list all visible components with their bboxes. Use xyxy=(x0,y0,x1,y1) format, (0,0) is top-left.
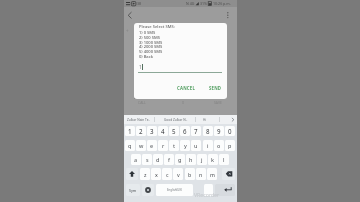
button[interactable]: a xyxy=(131,154,141,165)
button[interactable]: Hi xyxy=(195,115,215,124)
staticText: Hi xyxy=(203,118,207,122)
staticText: + xyxy=(126,28,129,34)
button[interactable] xyxy=(204,184,213,196)
button[interactable]: 7 xyxy=(191,126,201,136)
staticText: SEND xyxy=(209,85,222,91)
button[interactable]: n xyxy=(196,168,206,180)
staticText: 31% xyxy=(200,1,208,6)
button[interactable]: s xyxy=(142,154,152,165)
button[interactable] xyxy=(215,184,235,196)
staticText: 5) 4000 SMS xyxy=(139,49,163,55)
staticText: 1) 0 SMS xyxy=(139,30,156,36)
staticText: f xyxy=(168,156,170,163)
button[interactable]: d xyxy=(153,154,163,165)
button[interactable]: SEND xyxy=(205,82,226,94)
staticText: 6 xyxy=(183,127,187,135)
staticText: 10:26 p.m. xyxy=(213,1,231,6)
staticText: r xyxy=(162,142,165,149)
button[interactable]: q xyxy=(125,140,135,151)
staticText: n xyxy=(199,171,203,178)
staticText: o xyxy=(217,142,221,149)
staticText: X xyxy=(182,100,184,105)
staticText: d xyxy=(156,156,160,163)
button[interactable]: p xyxy=(225,140,235,151)
button[interactable]: m xyxy=(207,168,217,180)
button[interactable]: w xyxy=(136,140,146,151)
staticText: j xyxy=(201,156,203,163)
button[interactable]: 4 xyxy=(158,126,168,136)
staticText: c xyxy=(166,171,169,178)
button[interactable]: x xyxy=(151,168,161,180)
staticText: Please Select SMS: xyxy=(139,24,175,30)
button[interactable]: l xyxy=(219,154,229,165)
staticText: Good Zulkar N.. xyxy=(164,118,188,122)
button[interactable]: 9 xyxy=(214,126,224,136)
staticText: e xyxy=(150,142,154,149)
staticText: w xyxy=(139,142,144,149)
button[interactable]: 6 xyxy=(180,126,190,136)
staticText: 1 xyxy=(139,64,142,70)
button[interactable]: g xyxy=(175,154,185,165)
staticText: N 4G xyxy=(186,1,195,6)
button[interactable]: e xyxy=(147,140,157,151)
button[interactable]: b xyxy=(185,168,195,180)
staticText: s xyxy=(146,156,149,163)
staticText: 7 xyxy=(194,127,198,135)
staticText: q xyxy=(128,142,132,149)
button[interactable]: 3 xyxy=(147,126,157,136)
button[interactable] xyxy=(142,184,154,196)
button[interactable]: f xyxy=(164,154,174,165)
staticText: VRecorder xyxy=(194,191,220,198)
button[interactable]: y xyxy=(180,140,190,151)
button[interactable]: z xyxy=(140,168,150,180)
staticText: 0) Back xyxy=(139,54,154,60)
button[interactable]: o xyxy=(214,140,224,151)
staticText: i xyxy=(207,142,209,149)
button[interactable]: v xyxy=(173,168,183,180)
button[interactable]: c xyxy=(162,168,172,180)
staticText: 4) 2000 SMS xyxy=(139,44,163,50)
button[interactable]: CANCEL xyxy=(171,82,200,94)
button[interactable]: 0 xyxy=(225,126,235,136)
button[interactable]: Good Zulkar N.. xyxy=(154,115,196,124)
button[interactable]: k xyxy=(208,154,218,165)
staticText: v xyxy=(177,171,180,178)
button[interactable]: Sym xyxy=(126,184,140,196)
staticText: SAVE xyxy=(214,100,222,105)
staticText: g xyxy=(178,156,182,163)
staticText: CALL xyxy=(138,100,146,105)
button[interactable]: 8 xyxy=(203,126,213,136)
button[interactable]: u xyxy=(191,140,201,151)
button[interactable]: Zulkar Nain Te.. xyxy=(124,115,154,124)
button[interactable]: r xyxy=(158,140,168,151)
staticText: a xyxy=(134,156,138,163)
staticText: y xyxy=(184,142,187,149)
staticText: 0 xyxy=(228,127,232,135)
button[interactable]: 1 xyxy=(125,126,135,136)
button[interactable]: 5 xyxy=(169,126,179,136)
staticText: z xyxy=(144,171,147,178)
staticText: 3) 1000 SMS xyxy=(139,40,163,46)
button[interactable]: 2 xyxy=(136,126,146,136)
staticText: 3 xyxy=(150,127,154,135)
staticText: 2) 500 SMS xyxy=(139,35,161,41)
staticText: k xyxy=(211,156,215,163)
button[interactable]: English(UK) xyxy=(156,184,193,196)
staticText: p xyxy=(228,142,232,149)
button[interactable]: i xyxy=(203,140,213,151)
staticText: 38 xyxy=(137,1,142,6)
staticText: l xyxy=(223,156,225,163)
staticText: CANCEL xyxy=(177,85,195,91)
staticText: t xyxy=(173,142,176,149)
staticText: 9 xyxy=(217,127,221,135)
button[interactable]: h xyxy=(186,154,196,165)
button[interactable] xyxy=(222,168,235,180)
staticText: Sym xyxy=(129,188,137,193)
staticText: 8 xyxy=(206,127,210,135)
staticText: b xyxy=(188,171,192,178)
button[interactable] xyxy=(126,168,138,180)
button[interactable]: t xyxy=(169,140,179,151)
staticText: u xyxy=(194,142,198,149)
staticText: 4 xyxy=(161,127,165,135)
button[interactable]: j xyxy=(197,154,207,165)
